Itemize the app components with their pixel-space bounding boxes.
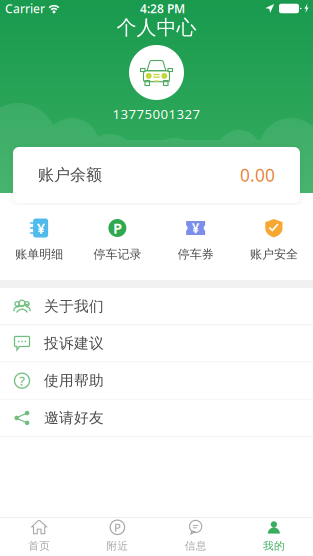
staticText: 投诉建议 (44, 334, 104, 352)
staticText: 附近 (106, 539, 128, 552)
staticText: 使用帮助 (44, 372, 104, 390)
staticText: 4:28 PM (140, 0, 185, 16)
staticText: 我的 (263, 539, 285, 552)
staticText: P (113, 218, 122, 238)
button[interactable]: ? (0, 362, 313, 400)
staticText: Carrier (5, 0, 45, 16)
button[interactable]: 关于我们 (0, 288, 313, 325)
staticText: 13775001327 (112, 105, 200, 123)
staticText: 首页 (28, 539, 50, 552)
staticText: ¥ (37, 218, 45, 238)
staticText: 个人中心 (116, 15, 196, 40)
button[interactable]: 投诉建议 (0, 325, 313, 362)
button[interactable]: 我的 (235, 519, 313, 555)
button[interactable]: 邀请好友 (0, 400, 313, 437)
staticText: ¥ (192, 219, 200, 237)
staticText: P (113, 518, 121, 536)
staticText: 账户余额 (38, 165, 102, 185)
button[interactable]: 信息 (156, 519, 235, 555)
staticText: 0.00 (240, 163, 275, 186)
button[interactable]: ¥ (156, 205, 235, 280)
staticText: ? (19, 372, 25, 389)
button[interactable]: P (78, 205, 156, 280)
staticText: 信息 (185, 539, 207, 552)
staticText: 账单明细 (15, 247, 63, 262)
staticText: 关于我们 (44, 297, 104, 315)
button[interactable]: 首页 (0, 519, 78, 555)
staticText: 停车记录 (93, 247, 141, 262)
button[interactable]: ¥ (0, 205, 78, 280)
button[interactable]: 账户安全 (235, 205, 313, 280)
staticText: 停车券 (178, 247, 214, 262)
button[interactable]: P (78, 519, 156, 555)
staticText: 账户安全 (250, 247, 298, 262)
staticText: 邀请好友 (44, 409, 104, 427)
